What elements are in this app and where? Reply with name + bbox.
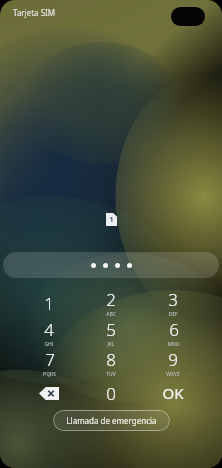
staticText: OK: [162, 383, 184, 403]
staticText: MNO: [167, 341, 180, 348]
button[interactable]: 6: [142, 318, 204, 348]
staticText: 1: [44, 292, 54, 315]
button[interactable]: 7: [18, 348, 80, 378]
button[interactable]: 2: [80, 288, 142, 318]
staticText: 6: [169, 318, 179, 341]
button[interactable]: Llamada de emergencia: [53, 410, 170, 431]
staticText: 0: [106, 382, 116, 405]
staticText: Tarjeta SIM: [13, 7, 55, 18]
button[interactable]: 0: [80, 378, 142, 408]
staticText: 3: [168, 288, 178, 311]
staticText: WXYZ: [166, 371, 180, 378]
staticText: TUV: [106, 371, 116, 378]
staticText: 9: [168, 348, 178, 371]
other: SIM 1: [106, 213, 117, 226]
staticText: 1: [109, 215, 114, 225]
staticText: ABC: [106, 311, 116, 318]
button[interactable]: [3, 252, 219, 278]
staticText: 8: [106, 348, 116, 371]
button[interactable]: 4: [18, 318, 80, 348]
button[interactable]: OK: [142, 378, 204, 408]
button[interactable]: 1: [18, 288, 80, 318]
staticText: 2: [106, 288, 116, 311]
button[interactable]: 9: [142, 348, 204, 378]
staticText: 5: [106, 318, 116, 341]
button[interactable]: 3: [142, 288, 204, 318]
staticText: Llamada de emergencia: [66, 415, 157, 426]
staticText: 4: [44, 318, 54, 341]
button[interactable]: Backspace: [18, 378, 80, 408]
staticText: PQRS: [43, 371, 56, 378]
button[interactable]: 5: [80, 318, 142, 348]
staticText: 7: [45, 348, 55, 371]
staticText: JKL: [107, 341, 115, 348]
staticText: GHI: [44, 341, 54, 348]
button[interactable]: 8: [80, 348, 142, 378]
staticText: DEF: [168, 311, 178, 318]
